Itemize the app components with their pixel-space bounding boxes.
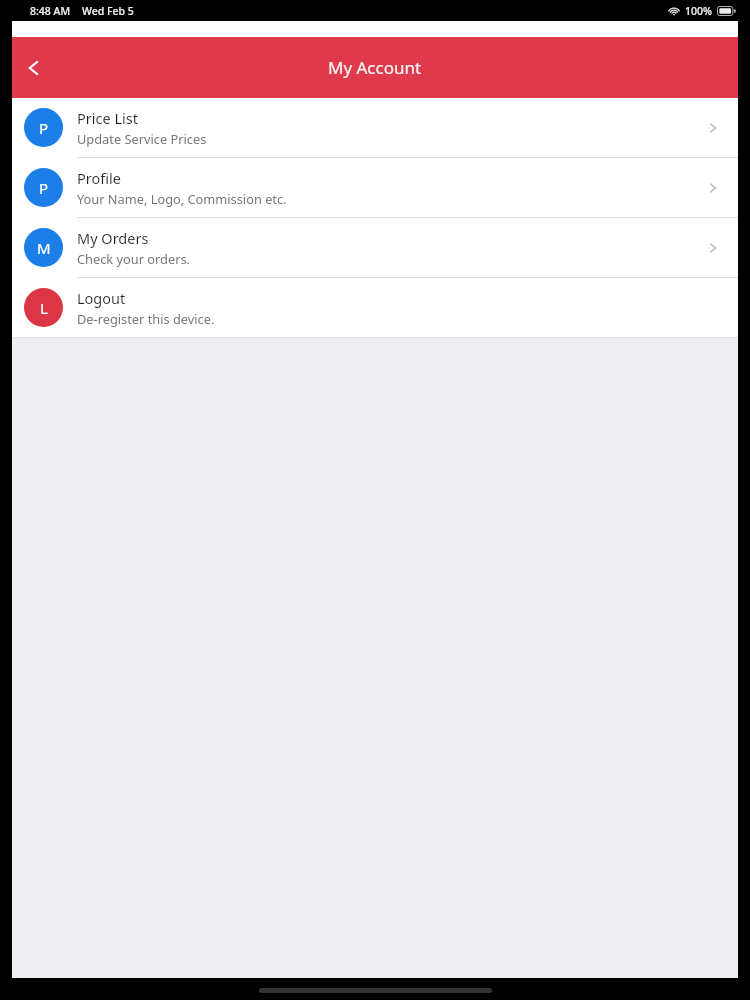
staticText: My Account [328,56,422,79]
staticText: My Orders [77,228,149,248]
button[interactable]: M [12,218,738,277]
staticText: 100% [685,4,712,18]
button[interactable]: P [12,98,738,157]
button[interactable]: Back [12,45,58,91]
staticText: Wed Feb 5 [82,4,134,18]
staticText: P [39,178,49,198]
button[interactable]: P [12,158,738,217]
staticText: L [40,298,48,318]
staticText: 8:48 AM [30,4,71,18]
staticText: Update Service Prices [77,130,207,147]
staticText: Price List [77,108,138,128]
staticText: Profile [77,168,121,188]
staticText: P [39,118,49,138]
staticText: Your Name, Logo, Commission etc. [77,190,287,207]
staticText: De-register this device. [77,310,215,327]
staticText: Check your orders. [77,250,191,267]
staticText: Logout [77,288,126,308]
staticText: M [37,238,51,258]
button[interactable]: L [12,278,738,337]
